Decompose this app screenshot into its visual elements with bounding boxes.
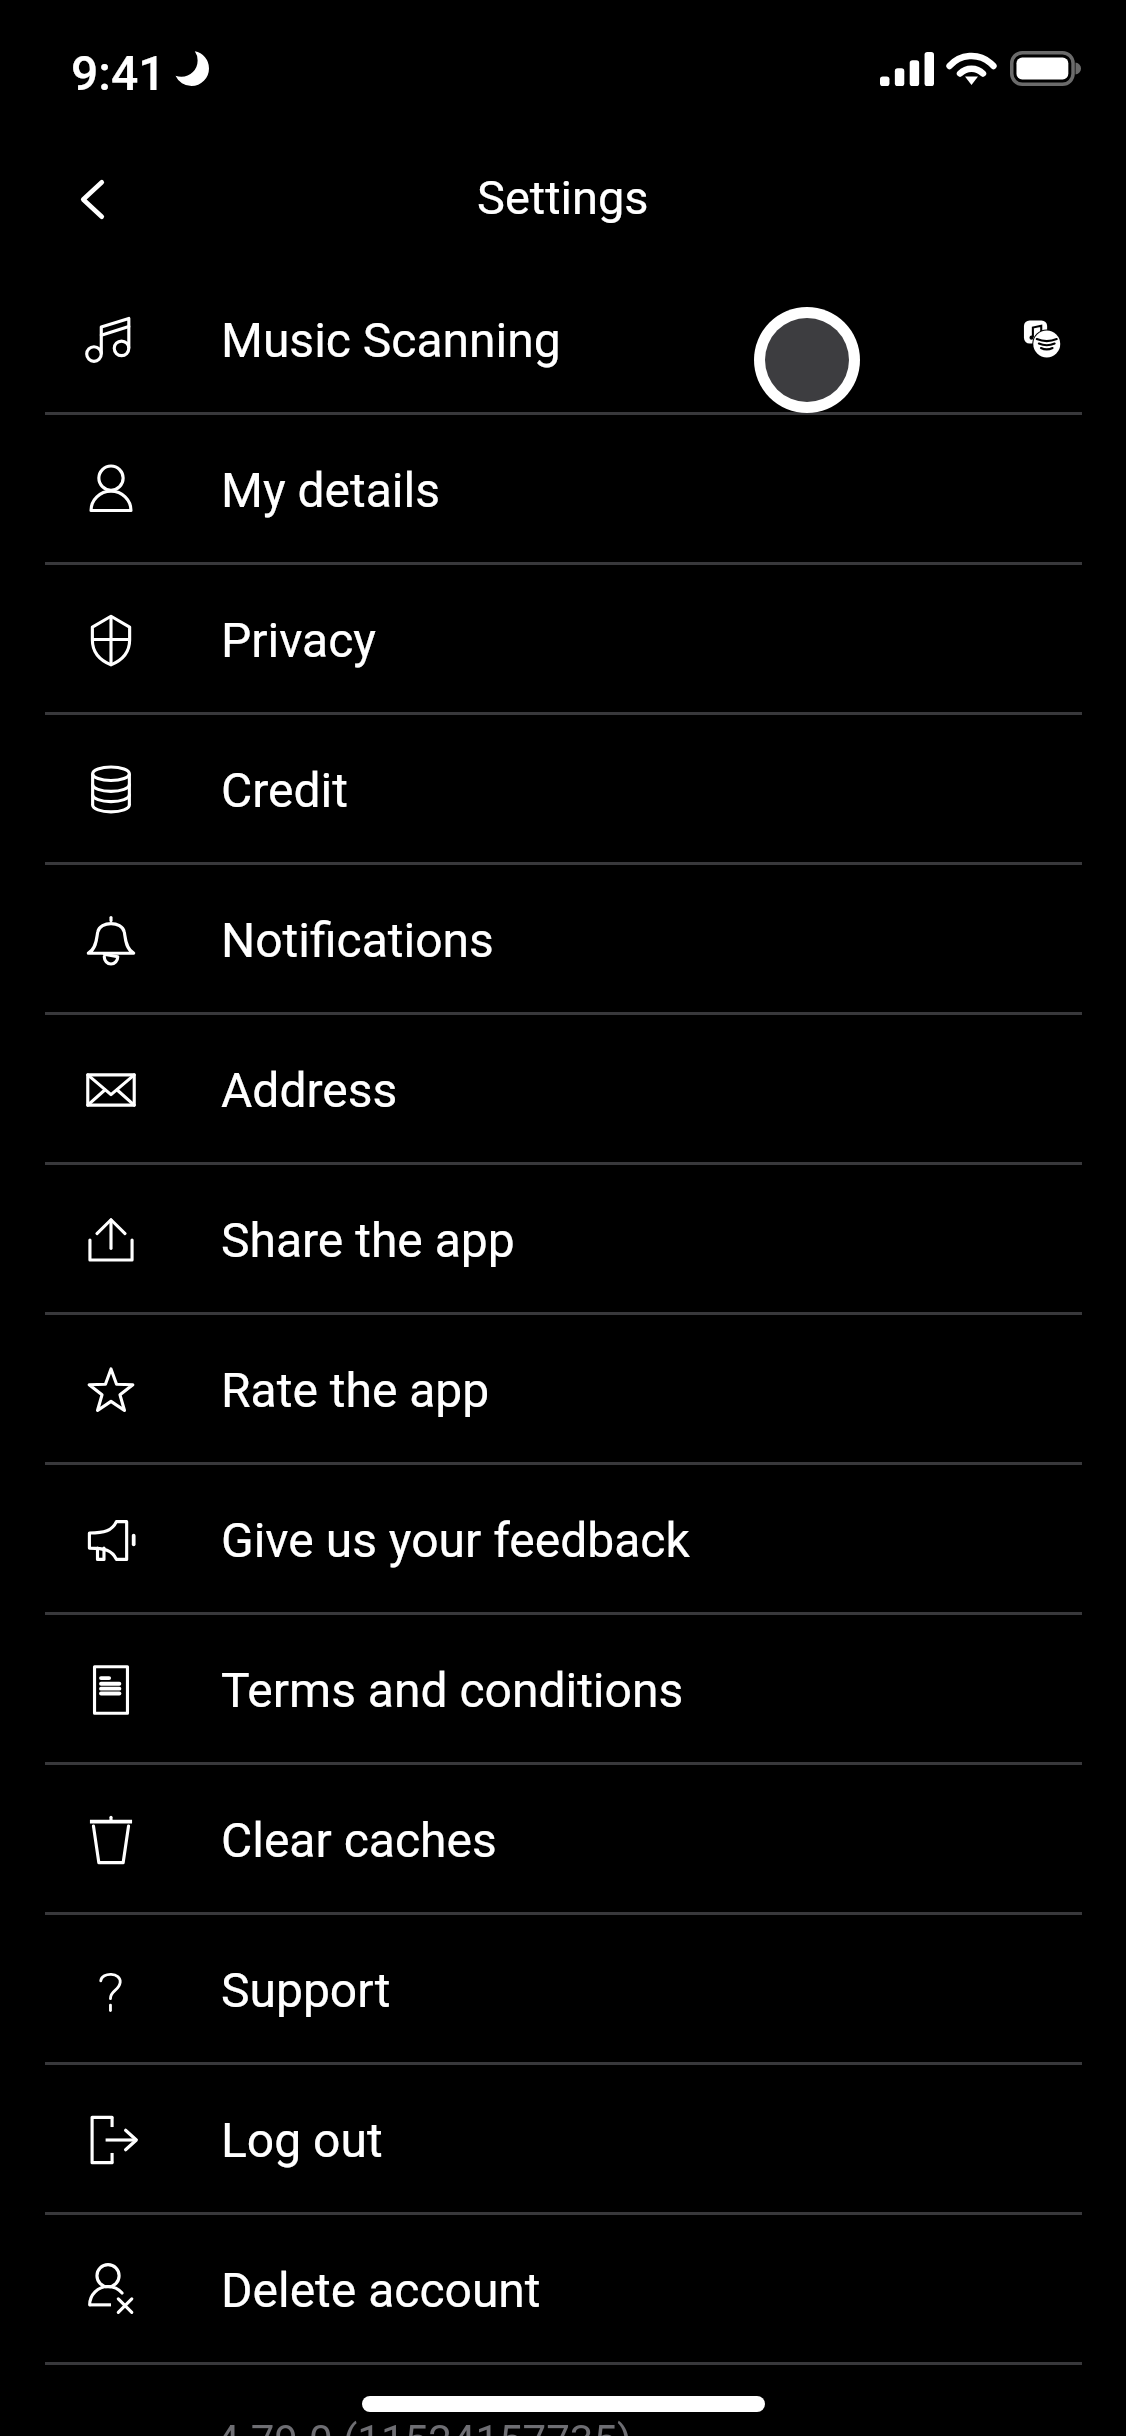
button[interactable]: Share the app (0, 1165, 1126, 1315)
button[interactable]: Log out (0, 2065, 1126, 2215)
button[interactable]: Toggle music scanning (754, 307, 860, 413)
button[interactable]: Connect Spotify (1007, 304, 1077, 374)
staticText: Support (221, 1962, 391, 2018)
staticText: Notifications (221, 912, 494, 968)
staticText: Share the app (221, 1212, 515, 1268)
staticText: Give us your feedback (221, 1512, 690, 1568)
button[interactable]: Clear caches (0, 1765, 1126, 1915)
staticText: 9:41 (71, 45, 166, 101)
button[interactable]: Delete account (0, 2215, 1126, 2365)
staticText: Address (221, 1062, 398, 1118)
button[interactable]: Give us your feedback (0, 1465, 1126, 1615)
staticText: Credit (221, 762, 348, 818)
staticText: Rate the app (221, 1362, 490, 1418)
staticText: My details (221, 462, 440, 518)
staticText: Terms and conditions (221, 1662, 684, 1718)
button[interactable]: Terms and conditions (0, 1615, 1126, 1765)
button[interactable]: Back (48, 150, 138, 240)
button[interactable]: Support (0, 1915, 1126, 2065)
staticText: Delete account (221, 2262, 541, 2318)
button[interactable]: Music Scanning (0, 265, 1126, 415)
staticText: Music Scanning (221, 312, 561, 368)
button[interactable]: My details (0, 415, 1126, 565)
staticText: Clear caches (221, 1812, 497, 1868)
staticText: Settings (477, 170, 649, 225)
button[interactable]: Rate the app (0, 1315, 1126, 1465)
button[interactable]: Address (0, 1015, 1126, 1165)
button[interactable]: Credit (0, 715, 1126, 865)
button[interactable]: Notifications (0, 865, 1126, 1015)
staticText: Log out (221, 2112, 383, 2168)
staticText: Privacy (221, 612, 377, 668)
button[interactable]: Privacy (0, 565, 1126, 715)
staticText: 4.79.0 (11524157735) (216, 2416, 632, 2436)
